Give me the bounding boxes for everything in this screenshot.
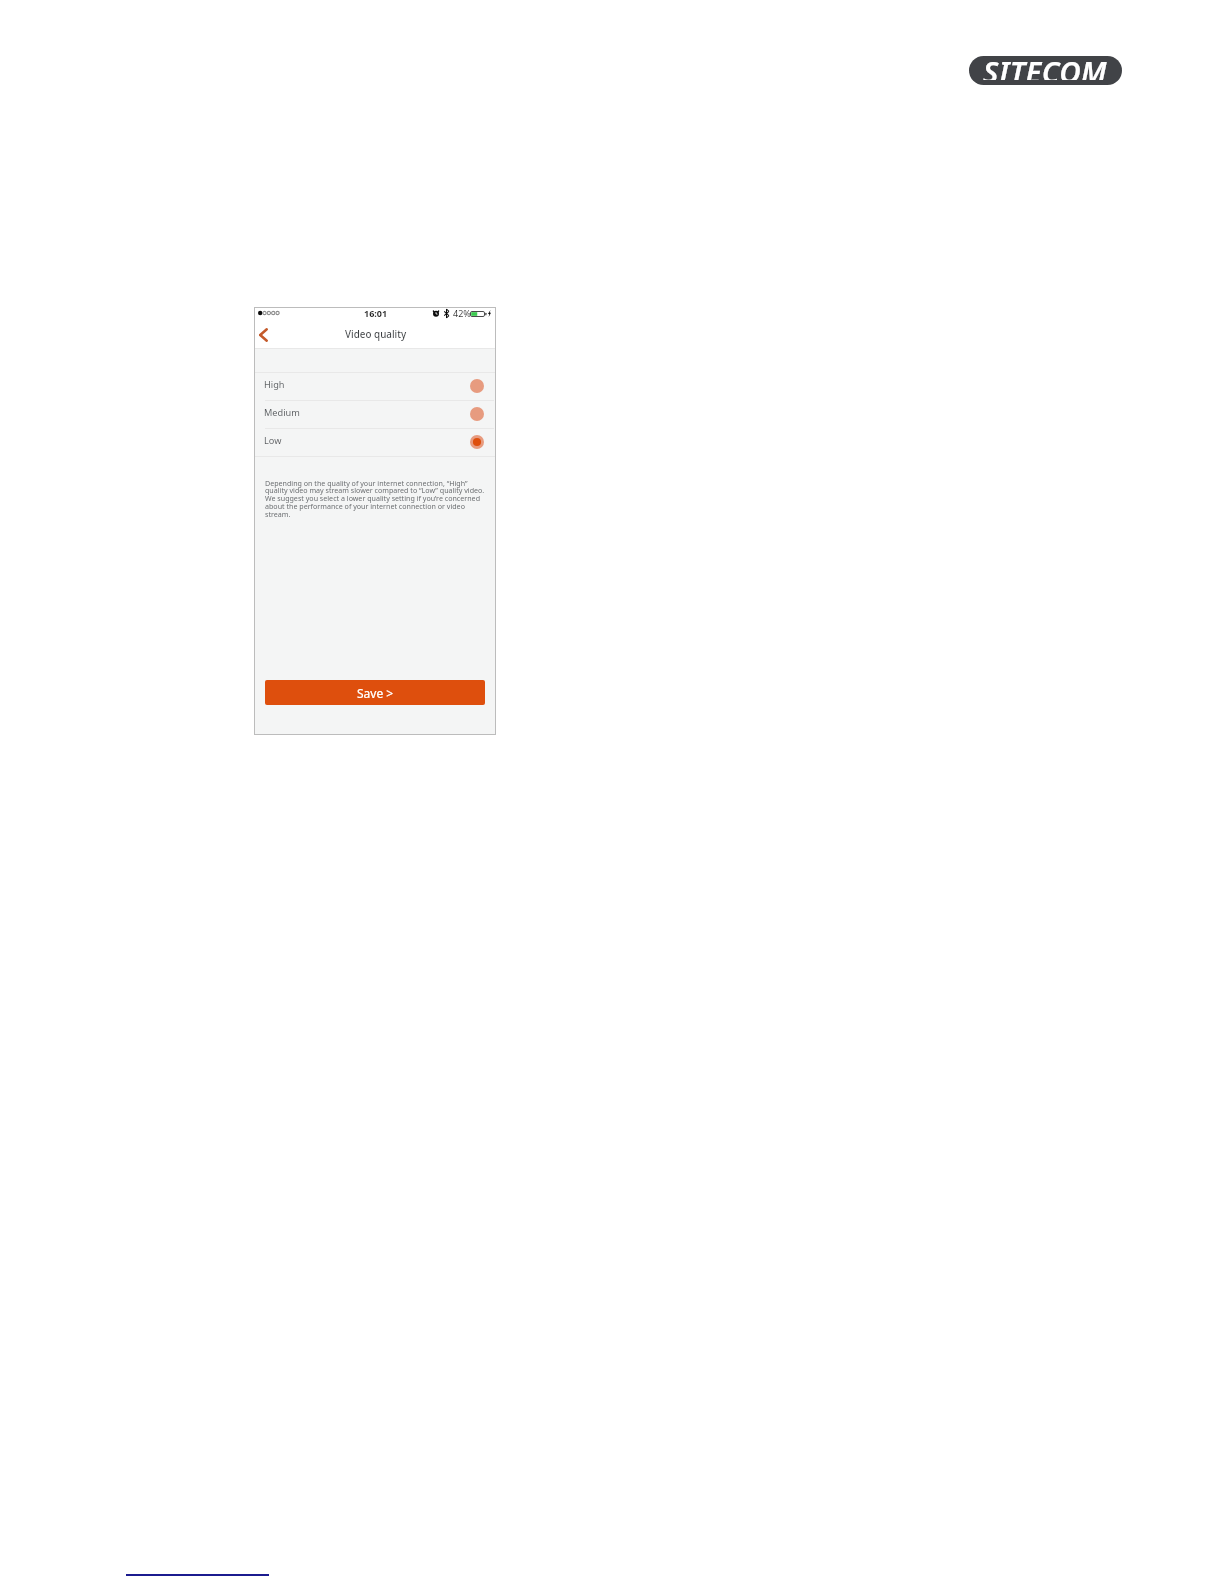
- button[interactable]: Low: [254, 429, 496, 457]
- button[interactable]: Save >: [265, 680, 485, 705]
- button[interactable]: High: [254, 373, 496, 401]
- staticText: Save >: [357, 685, 394, 701]
- staticText: SITECOM: [983, 56, 1108, 80]
- staticText: Depending on the quality of your interne…: [265, 478, 485, 520]
- staticText: Video quality: [345, 327, 407, 340]
- button[interactable]: Medium: [254, 401, 496, 429]
- staticText: High: [264, 378, 285, 391]
- staticText: 42%: [453, 307, 471, 319]
- staticText: Medium: [264, 406, 300, 419]
- button[interactable]: Back: [255, 324, 277, 346]
- staticText: Low: [264, 434, 282, 447]
- staticText: 16:01: [364, 307, 388, 319]
